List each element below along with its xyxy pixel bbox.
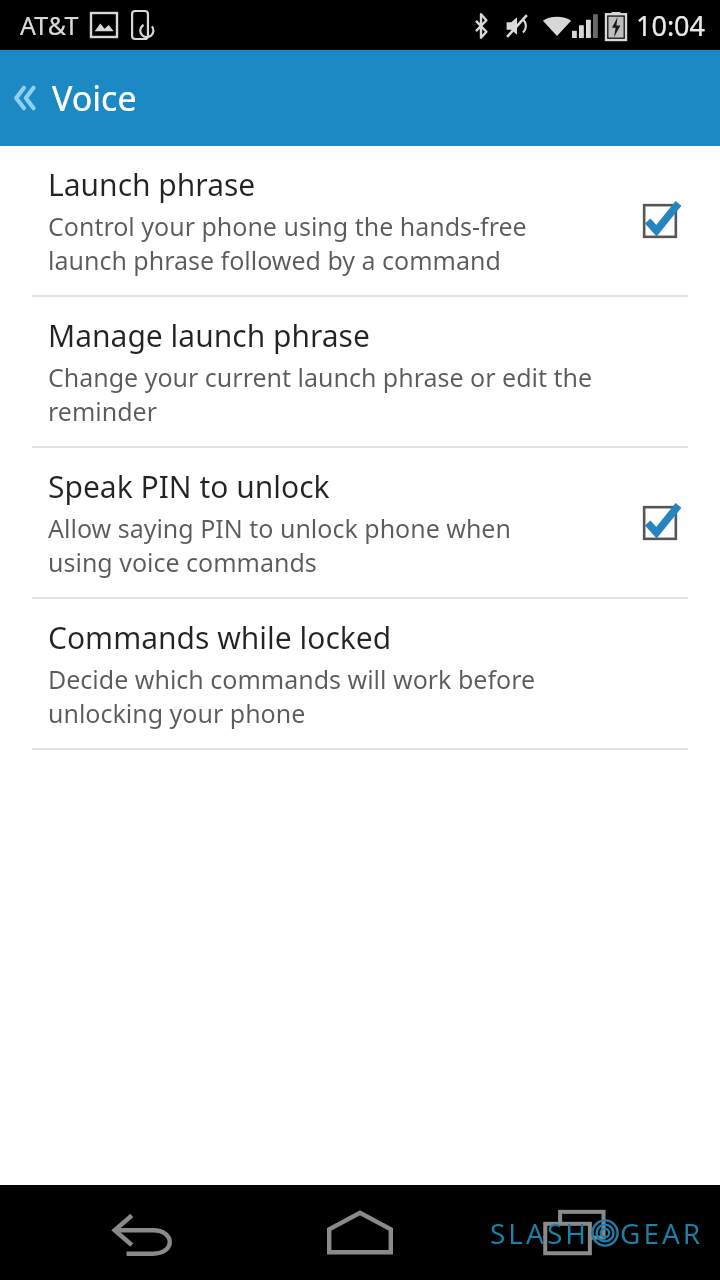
other: Back (12, 81, 42, 115)
staticText: Allow saying PIN to unlock phone when (48, 511, 511, 545)
staticText: reminder (48, 394, 158, 428)
staticText: Manage launch phrase (48, 315, 370, 356)
staticText: using voice commands (48, 545, 317, 579)
staticText: Voice (52, 75, 137, 121)
staticText: AT&T (20, 8, 79, 42)
button[interactable]: Speak PIN to unlock (0, 448, 720, 597)
staticText: 10:04 (636, 7, 706, 44)
staticText: Control your phone using the hands-free (48, 209, 527, 243)
button[interactable]: Manage launch phrase (0, 297, 720, 446)
button[interactable]: Recent apps (505, 1185, 645, 1280)
staticText: SLASH (490, 1214, 590, 1252)
staticText: Decide which commands will work before (48, 662, 536, 696)
button[interactable]: Toggle Speak PIN to unlock (630, 493, 690, 553)
button[interactable]: Toggle Launch phrase (630, 191, 690, 251)
staticText: launch phrase followed by a command (48, 243, 501, 277)
button[interactable]: Back (0, 50, 720, 146)
button[interactable]: Back (75, 1185, 215, 1280)
button[interactable]: Launch phrase (0, 146, 720, 295)
button[interactable]: Home (290, 1185, 430, 1280)
staticText: Speak PIN to unlock (48, 466, 330, 507)
staticText: Launch phrase (48, 164, 256, 205)
staticText: Commands while locked (48, 617, 392, 658)
staticText: Change your current launch phrase or edi… (48, 360, 593, 394)
staticText: GEAR (620, 1214, 704, 1252)
button[interactable]: Commands while locked (0, 599, 720, 748)
staticText: unlocking your phone (48, 696, 306, 730)
